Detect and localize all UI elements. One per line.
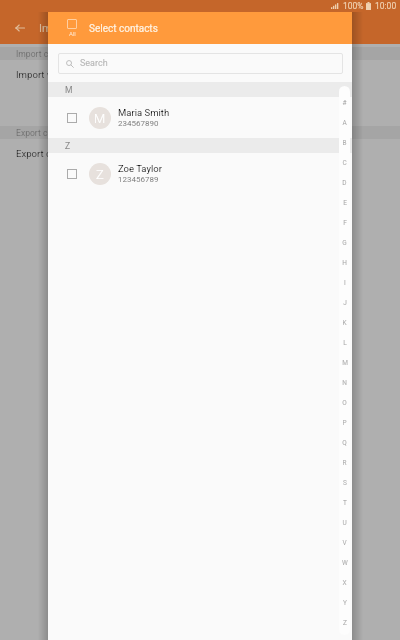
staticText: N xyxy=(342,379,347,387)
staticText: Import/Export contacts xyxy=(39,22,154,35)
other: Back xyxy=(15,23,25,33)
staticText: K xyxy=(342,319,347,327)
staticText: R xyxy=(342,459,347,467)
staticText: M xyxy=(65,85,73,95)
staticText: Search xyxy=(80,58,108,69)
staticText: D xyxy=(342,179,347,187)
staticText: # xyxy=(342,99,347,107)
button[interactable]: M xyxy=(48,97,352,138)
staticText: O xyxy=(342,399,347,407)
staticText: G xyxy=(342,239,347,247)
staticText: I xyxy=(344,279,346,287)
staticText: Z xyxy=(65,141,71,151)
staticText: S xyxy=(343,479,347,487)
staticText: 234567890 xyxy=(118,119,159,128)
staticText: Export contacts xyxy=(16,148,84,159)
button[interactable]: Back xyxy=(0,12,39,44)
button[interactable]: Import when connected xyxy=(0,60,400,88)
staticText: C xyxy=(342,159,347,167)
staticText: 10:00 xyxy=(375,1,397,11)
staticText: H xyxy=(342,259,347,267)
staticText: 123456789 xyxy=(118,175,159,184)
button[interactable]: Search xyxy=(58,53,343,74)
staticText: F xyxy=(343,219,347,227)
staticText: E xyxy=(343,199,347,207)
staticText: Y xyxy=(343,599,347,607)
staticText: X xyxy=(342,579,347,587)
staticText: T xyxy=(343,499,347,507)
staticText: Maria Smith xyxy=(118,107,170,118)
staticText: P xyxy=(342,419,347,427)
button[interactable]: Export contacts xyxy=(0,139,400,167)
staticText: Zoe Taylor xyxy=(118,163,162,174)
staticText: W xyxy=(342,559,348,567)
staticText: 100% xyxy=(343,1,364,11)
staticText: Select contacts xyxy=(89,23,158,35)
button[interactable]: Alphabet index xyxy=(339,86,350,635)
staticText: B xyxy=(342,139,347,147)
button[interactable]: Z xyxy=(48,153,352,194)
staticText: A xyxy=(342,119,347,127)
staticText: Import when connected xyxy=(16,69,117,80)
staticText: Z xyxy=(343,619,347,627)
button[interactable]: Select all xyxy=(63,12,81,44)
staticText: Import contacts xyxy=(16,49,78,59)
staticText: M xyxy=(94,111,106,126)
staticText: M xyxy=(342,359,348,367)
staticText: V xyxy=(342,539,347,547)
staticText: Z xyxy=(96,167,104,182)
staticText: L xyxy=(343,339,347,347)
staticText: Q xyxy=(342,439,347,447)
staticText: J xyxy=(343,299,347,307)
staticText: All xyxy=(69,30,76,37)
staticText: U xyxy=(342,519,347,527)
staticText: Export contacts xyxy=(16,128,77,138)
